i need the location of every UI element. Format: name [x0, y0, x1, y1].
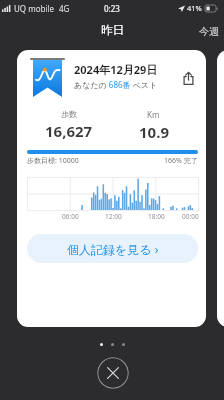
staticText: 4G — [59, 3, 70, 14]
staticText: 歩数目標: 10000 — [27, 156, 79, 166]
staticText: Km — [147, 109, 160, 120]
button[interactable]: Share — [180, 70, 196, 86]
staticText: 41% — [187, 3, 202, 13]
staticText: 12:00 — [105, 212, 122, 221]
staticText: 10.9 — [139, 122, 169, 142]
staticText: 00:00 — [182, 212, 199, 221]
staticText: 166% 完了 — [164, 156, 198, 166]
staticText: 今週 — [199, 25, 219, 38]
staticText: 昨日 — [101, 23, 124, 37]
staticText: あなたの 686番 ベスト — [74, 79, 158, 90]
staticText: 16,627 — [45, 121, 93, 141]
staticText: 歩数 — [61, 109, 77, 119]
staticText: 0:23 — [104, 3, 120, 14]
staticText: 06:00 — [62, 212, 79, 221]
button[interactable]: 個人記録を見る › — [27, 234, 198, 263]
button[interactable]: 今週 — [199, 25, 219, 38]
button[interactable]: Close — [97, 357, 129, 389]
staticText: 2024年12月29日 — [74, 62, 158, 77]
staticText: 個人記録を見る › — [67, 241, 159, 257]
staticText: 18:00 — [148, 212, 165, 221]
staticText: UQ mobile — [14, 3, 55, 14]
